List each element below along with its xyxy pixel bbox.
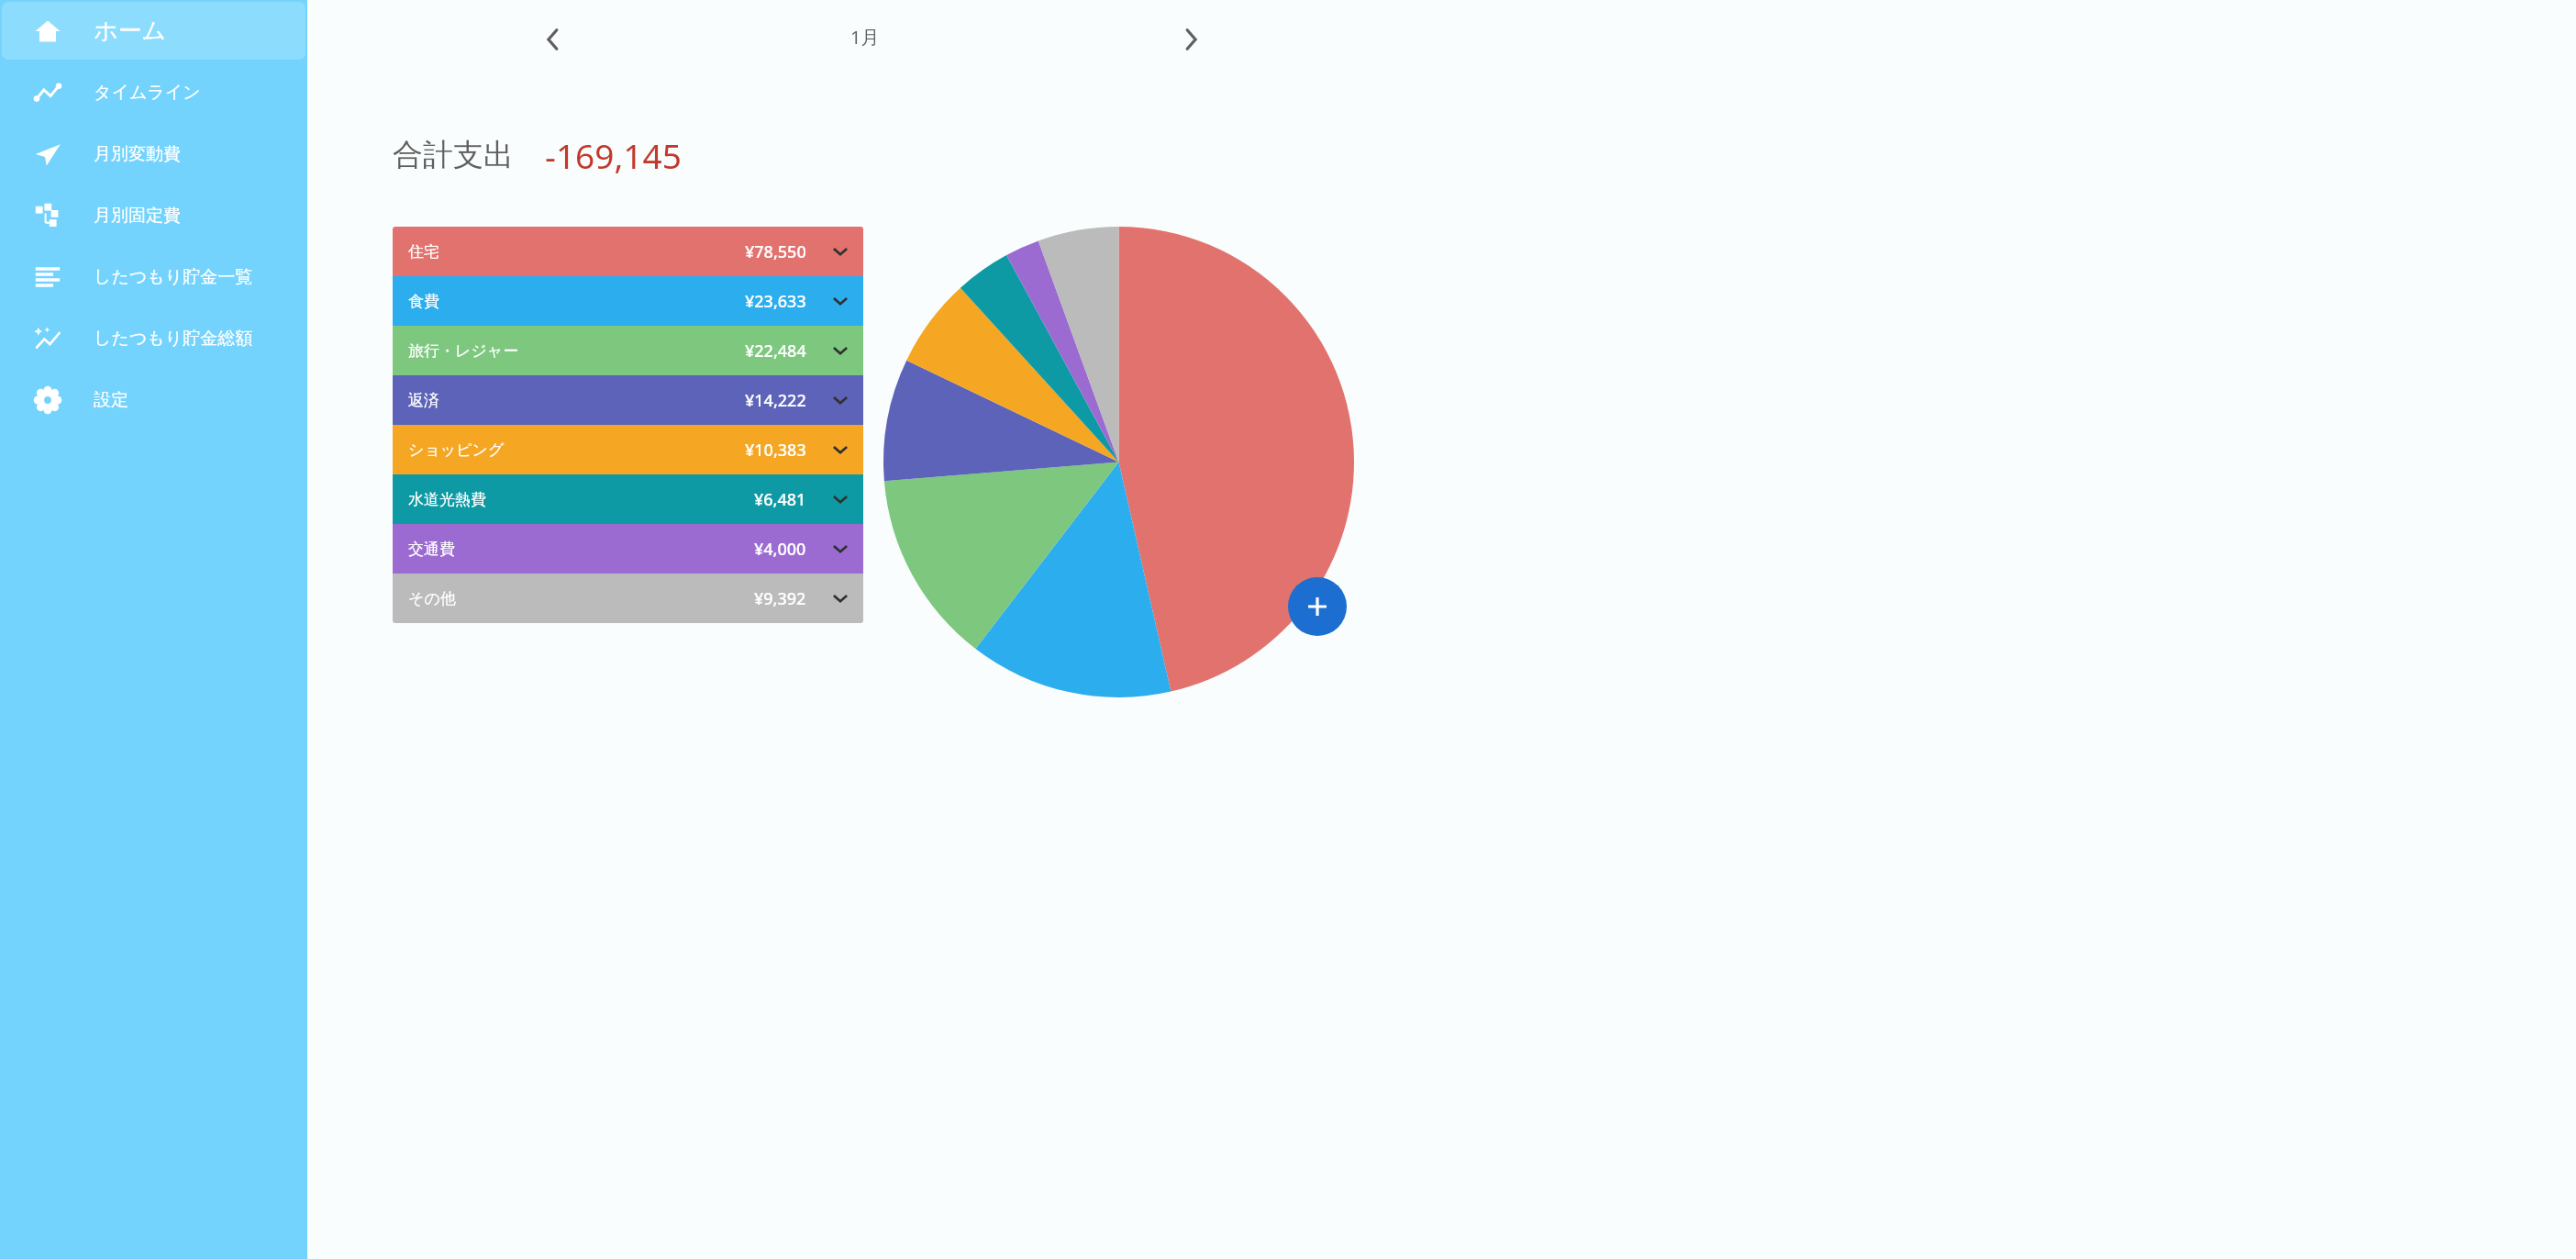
staticText: 交通費 (408, 540, 455, 559)
staticText: ¥4,000 (754, 538, 806, 561)
button[interactable]: 返済 (393, 375, 863, 425)
button[interactable]: その他 (393, 574, 863, 623)
staticText: ¥14,222 (745, 389, 806, 412)
button[interactable]: Next month (1167, 16, 1215, 63)
button[interactable]: したつもり貯金総額 (2, 309, 305, 367)
staticText: ¥78,550 (745, 240, 806, 263)
button[interactable]: 設定 (2, 371, 305, 429)
staticText: -169,145 (545, 132, 682, 178)
button[interactable]: 旅行・レジャー (393, 326, 863, 375)
button[interactable]: タイムライン (2, 63, 305, 121)
staticText: 月別変動費 (94, 143, 181, 165)
staticText: ¥6,481 (754, 488, 806, 511)
staticText: 水道光熱費 (408, 490, 486, 509)
staticText: 合計支出 (393, 136, 514, 174)
staticText: タイムライン (94, 82, 201, 104)
button[interactable]: したつもり貯金一覧 (2, 248, 305, 306)
staticText: したつもり貯金一覧 (94, 266, 253, 288)
staticText: 返済 (408, 391, 439, 410)
button[interactable]: Previous month (529, 16, 577, 63)
button[interactable]: 住宅 (393, 227, 863, 276)
staticText: ホーム (94, 16, 167, 46)
button[interactable]: 食費 (393, 276, 863, 326)
staticText: ¥23,633 (745, 290, 806, 313)
staticText: 旅行・レジャー (408, 341, 519, 361)
button[interactable]: 交通費 (393, 524, 863, 574)
staticText: その他 (408, 589, 456, 608)
button[interactable]: ホーム (2, 2, 305, 60)
button[interactable]: 水道光熱費 (393, 474, 863, 524)
button[interactable]: ショッピング (393, 425, 863, 474)
staticText: 住宅 (408, 242, 439, 262)
button[interactable]: 月別変動費 (2, 125, 305, 183)
button[interactable]: Add (1288, 577, 1347, 636)
button[interactable]: 月別固定費 (2, 186, 305, 244)
staticText: したつもり貯金総額 (94, 328, 253, 350)
staticText: ¥10,383 (745, 439, 806, 462)
staticText: ¥9,392 (754, 587, 806, 610)
staticText: 1月 (850, 25, 880, 50)
staticText: ¥22,484 (745, 340, 806, 362)
staticText: ショッピング (408, 440, 505, 460)
staticText: 食費 (408, 292, 439, 311)
staticText: 月別固定費 (94, 205, 181, 227)
staticText: 設定 (94, 389, 128, 411)
